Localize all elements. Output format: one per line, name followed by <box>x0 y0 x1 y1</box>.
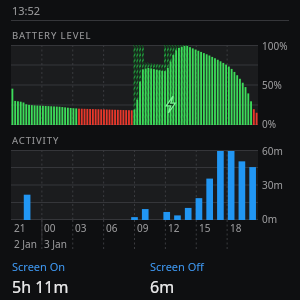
staticText: 60m <box>262 144 283 158</box>
staticText: 00 <box>44 221 56 235</box>
staticText: 5h 11m <box>12 276 69 298</box>
staticText: 12 <box>168 221 180 235</box>
staticText: 09 <box>137 221 149 235</box>
staticText: 18 <box>230 221 242 235</box>
staticText: 13:52 <box>12 3 41 18</box>
staticText: 100% <box>262 39 288 53</box>
staticText: BATTERY LEVEL <box>12 29 92 42</box>
staticText: 6m <box>150 276 175 298</box>
staticText: 03 <box>75 221 87 235</box>
staticText: 0% <box>262 117 277 131</box>
staticText: 30m <box>262 178 283 192</box>
staticText: ACTIVITY <box>12 134 60 147</box>
staticText: Screen Off <box>150 259 204 274</box>
staticText: 21 <box>14 221 26 235</box>
staticText: 15 <box>199 221 211 235</box>
button[interactable]: Screen Off <box>150 259 300 298</box>
staticText: 50% <box>262 78 282 92</box>
staticText: 2 Jan <box>14 237 37 250</box>
staticText: 06 <box>106 221 118 235</box>
staticText: 0m <box>262 212 278 226</box>
staticText: 3 Jan <box>44 237 67 250</box>
button[interactable]: Screen On <box>12 259 150 298</box>
staticText: Screen On <box>12 259 66 274</box>
